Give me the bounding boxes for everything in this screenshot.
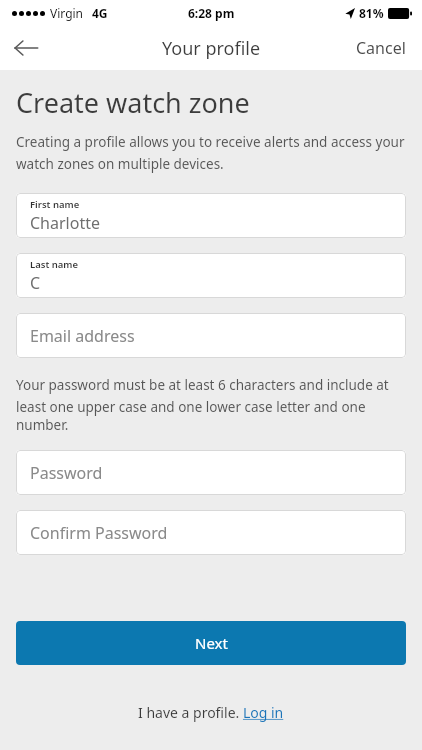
button[interactable]: Back [0, 26, 52, 70]
button[interactable]: Password [16, 450, 406, 495]
button[interactable]: Next [16, 621, 406, 665]
staticText: least one upper case and one lower case … [16, 398, 412, 434]
button[interactable]: Cancel [340, 27, 422, 69]
staticText: Virgin [50, 5, 84, 21]
staticText: Confirm Password [30, 522, 168, 544]
button[interactable]: I have a profile. Log in [0, 693, 422, 732]
staticText: 81% [359, 5, 384, 21]
staticText: Your profile [162, 36, 261, 61]
staticText: Your password must be at least 6 charact… [16, 376, 389, 394]
staticText: Create watch zone [16, 84, 250, 121]
button[interactable]: Email address [16, 313, 406, 358]
staticText: Next [195, 633, 228, 653]
staticText: Creating a profile allows you to receive… [16, 133, 405, 151]
button[interactable]: First name [16, 193, 406, 238]
staticText: C [30, 272, 41, 294]
staticText: Password [30, 462, 103, 484]
staticText: Charlotte [30, 212, 100, 234]
staticText: 4G [92, 5, 108, 21]
staticText: First name [30, 198, 80, 211]
staticText: 6:28 pm [188, 5, 235, 21]
staticText: watch zones on multiple devices. [16, 155, 224, 173]
button[interactable]: Last name [16, 253, 406, 298]
staticText: I have a profile. Log in [138, 703, 284, 722]
staticText: Last name [30, 258, 79, 271]
button[interactable]: Confirm Password [16, 510, 406, 555]
staticText: Cancel [356, 37, 406, 59]
staticText: Email address [30, 325, 135, 347]
